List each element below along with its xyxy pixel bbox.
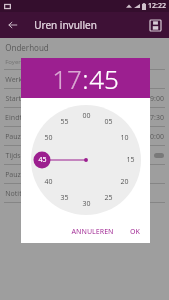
staticText: OK [130,227,140,237]
button[interactable]: Eindtijd [0,108,169,127]
button[interactable]: OK [126,224,144,240]
button[interactable]: 55 [56,114,72,130]
staticText: 20 [120,177,129,187]
staticText: 45 [89,61,119,96]
button[interactable]: Starttijd [0,89,169,108]
button[interactable]: 15 [122,152,138,168]
staticText: 00:00 [146,132,164,142]
staticText: : [82,61,89,96]
button[interactable]: ANNULEREN [67,224,118,240]
staticText: 17 [52,61,82,96]
staticText: 17:30 [146,113,164,123]
button[interactable]: Notities [0,184,169,203]
button[interactable]: 25 [100,190,116,206]
button[interactable]: 20 [116,174,132,190]
button[interactable]: 30 [78,196,94,212]
staticText: 00 [82,111,91,121]
button[interactable]: Tijdsduur [0,146,169,165]
staticText: Onderhoud [5,42,49,53]
button[interactable]: 10 [116,130,132,146]
button[interactable]: 50 [40,130,56,146]
staticText: 10 [120,133,129,143]
button[interactable]: 40 [40,174,56,190]
staticText: 15 [126,155,135,165]
button[interactable]: Werkzaamheden [0,70,169,89]
button[interactable]: Pauze [0,127,169,146]
staticText: Notities [5,189,31,199]
staticText: 45 [38,155,47,165]
staticText: 05 [104,117,113,127]
staticText: Pauze [5,132,25,142]
staticText: 12:22 [148,1,166,11]
staticText: 55 [60,117,69,127]
staticText: Pauze [5,170,25,180]
staticText: Starttijd [5,94,32,104]
staticText: Werkzaamheden [5,75,61,85]
button[interactable]: 45 [34,152,50,168]
button[interactable]: Save [146,16,164,34]
button[interactable]: Back [4,16,22,34]
button[interactable]: 05 [100,114,116,130]
staticText: 09:00 [146,94,164,104]
staticText: 35 [60,193,69,203]
staticText: 30 [82,199,91,209]
button[interactable]: Pauze [0,165,169,184]
staticText: 50 [44,133,53,143]
button[interactable]: 35 [56,190,72,206]
staticText: 25 [104,193,113,203]
staticText: Tijdsduur [5,151,37,161]
button[interactable]: 00 [78,108,94,124]
staticText: 40 [44,177,53,187]
staticText: Uren invullen [34,18,97,32]
staticText: Eindtijd [5,113,30,123]
staticText: ANNULEREN [71,227,114,237]
staticText: Foyer [5,58,21,66]
